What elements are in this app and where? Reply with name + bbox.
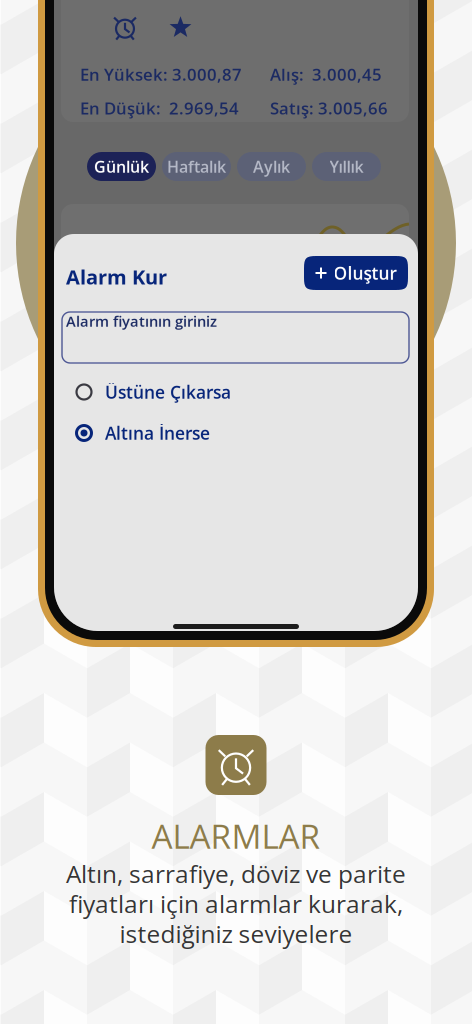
staticText: fiyatları için alarmlar kurarak,: [69, 887, 403, 920]
button[interactable]: Altına İnerse: [76, 422, 210, 444]
staticText: Haftalık: [167, 156, 226, 177]
staticText: En Düşük: 2.969,54: [80, 97, 239, 119]
button[interactable]: Günlük: [87, 152, 156, 181]
staticText: Oluştur: [333, 261, 396, 285]
staticText: Alarm fiyatının giriniz: [66, 311, 217, 331]
staticText: ALARMLAR: [151, 813, 320, 858]
button[interactable]: Haftalık: [162, 152, 231, 181]
staticText: Satış: 3.005,66: [270, 97, 388, 119]
staticText: Günlük: [94, 156, 149, 177]
staticText: Altına İnerse: [105, 421, 210, 445]
staticText: Yıllık: [329, 156, 363, 177]
button[interactable]: Yıllık: [312, 152, 381, 181]
staticText: Aylık: [253, 156, 290, 177]
button[interactable]: Oluştur: [304, 256, 408, 290]
staticText: Alış: 3.000,45: [270, 63, 382, 86]
button[interactable]: Alarm fiyatının giriniz: [62, 312, 409, 363]
staticText: Üstüne Çıkarsa: [105, 380, 231, 404]
staticText: Altın, sarrafiye, döviz ve parite: [66, 857, 406, 890]
staticText: Alarm Kur: [66, 263, 167, 290]
button[interactable]: Üstüne Çıkarsa: [76, 381, 231, 403]
staticText: En Yüksek: 3.000,87: [80, 63, 242, 86]
button[interactable]: Aylık: [237, 152, 306, 181]
staticText: istediğiniz seviyelere: [119, 917, 352, 950]
